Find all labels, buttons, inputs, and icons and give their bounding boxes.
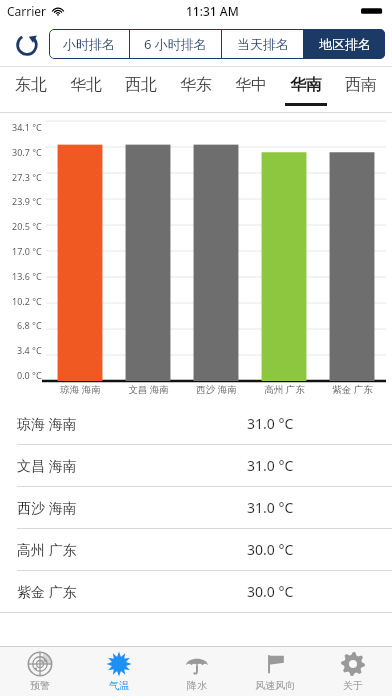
staticText: 30.0 °C [247, 582, 294, 601]
staticText: 关于 [343, 679, 363, 692]
staticText: 文昌 海南 [17, 456, 77, 475]
staticText: 西沙 海南 [196, 383, 237, 396]
button[interactable]: 琼海 海南 [0, 403, 392, 445]
button[interactable]: 华南 [278, 67, 333, 113]
staticText: 紫金 广东 [17, 582, 77, 601]
staticText: 13.6 °C [12, 270, 42, 282]
button[interactable]: 气温 [79, 647, 158, 696]
button[interactable]: 当天排名 [222, 29, 303, 59]
staticText: 华南 [290, 75, 322, 95]
button[interactable]: 西南 [333, 67, 388, 113]
staticText: 华东 [180, 75, 212, 95]
button[interactable]: 小时排名 [49, 29, 129, 59]
staticText: 小时排名 [63, 36, 115, 52]
button[interactable]: 地区排名 [304, 29, 385, 59]
button[interactable]: 华北 [58, 67, 113, 113]
button[interactable]: 6 小时排名 [130, 29, 221, 59]
staticText: 20.5 °C [12, 220, 42, 232]
staticText: 23.9 °C [12, 195, 42, 207]
staticText: 31.0 °C [247, 456, 294, 475]
staticText: 降水 [187, 679, 207, 692]
staticText: 11:31 AM [186, 3, 239, 19]
button[interactable]: 高州 广东 [0, 529, 392, 571]
staticText: 文昌 海南 [128, 383, 169, 396]
staticText: 西北 [125, 75, 157, 95]
staticText: Carrier [7, 3, 47, 19]
staticText: 预警 [30, 679, 50, 692]
staticText: 琼海 海南 [60, 383, 101, 396]
staticText: 31.0 °C [247, 498, 294, 517]
button[interactable]: 华东 [168, 67, 223, 113]
staticText: 东北 [15, 75, 47, 95]
staticText: 27.3 °C [12, 171, 42, 183]
staticText: 0.0 °C [17, 369, 42, 381]
staticText: 30.0 °C [247, 540, 294, 559]
staticText: 华中 [235, 75, 267, 95]
staticText: 31.0 °C [247, 414, 294, 433]
button[interactable]: 西北 [113, 67, 168, 113]
staticText: 高州 广东 [264, 383, 305, 396]
button[interactable]: 东北 [4, 67, 58, 113]
staticText: 高州 广东 [17, 540, 77, 559]
staticText: 西沙 海南 [17, 498, 77, 517]
button[interactable]: 西沙 海南 [0, 487, 392, 529]
staticText: 3.4 °C [17, 344, 42, 356]
staticText: 34.1 °C [12, 121, 42, 133]
staticText: 西南 [345, 75, 377, 95]
staticText: 30.7 °C [12, 146, 42, 158]
staticText: 气温 [109, 679, 129, 692]
button[interactable]: 降水 [158, 647, 236, 696]
staticText: 华北 [70, 75, 102, 95]
staticText: 6 小时排名 [144, 35, 207, 53]
button[interactable]: 文昌 海南 [0, 445, 392, 487]
button[interactable]: 紫金 广东 [0, 571, 392, 613]
button[interactable]: 风速风向 [236, 647, 314, 696]
button[interactable]: 关于 [314, 647, 392, 696]
staticText: 地区排名 [319, 36, 371, 52]
staticText: 6.8 °C [17, 319, 42, 331]
staticText: 10.2 °C [12, 295, 42, 307]
staticText: 风速风向 [255, 679, 295, 692]
button[interactable]: 预警 [0, 647, 79, 696]
staticText: 17.0 °C [12, 245, 42, 257]
button[interactable]: Refresh [10, 27, 44, 61]
staticText: 当天排名 [237, 36, 289, 52]
button[interactable]: 华中 [223, 67, 278, 113]
staticText: 紫金 广东 [332, 383, 373, 396]
staticText: 琼海 海南 [17, 414, 77, 433]
